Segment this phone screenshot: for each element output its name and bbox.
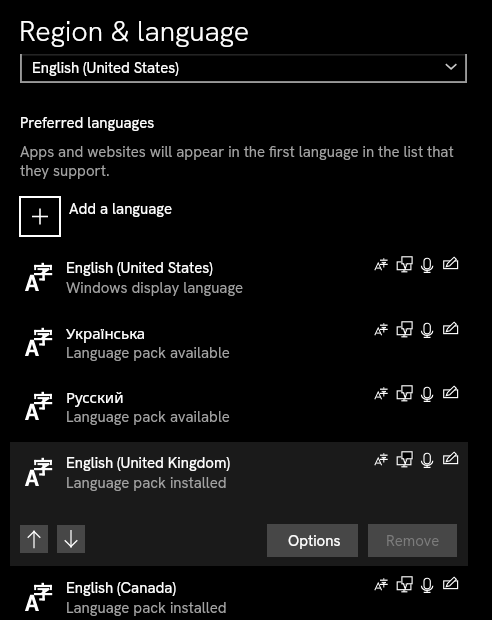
- button[interactable]: Speech recognition: [419, 575, 439, 595]
- button[interactable]: Text to speech: [395, 450, 417, 470]
- button[interactable]: Text to speech: [395, 255, 417, 275]
- button[interactable]: Speech recognition: [419, 450, 439, 470]
- staticText: Preferred languages: [20, 113, 155, 133]
- button[interactable]: Move up: [20, 525, 48, 553]
- staticText: Language pack available: [66, 407, 230, 427]
- button[interactable]: Translate: [372, 450, 392, 470]
- staticText: Add a language: [69, 199, 173, 219]
- button[interactable]: Translate: [372, 575, 392, 595]
- button[interactable]: Move down: [57, 525, 85, 553]
- staticText: English (United States): [32, 58, 179, 78]
- button[interactable]: Handwriting: [441, 255, 461, 275]
- staticText: English (Canada): [66, 578, 176, 598]
- button[interactable]: [20, 197, 320, 237]
- button[interactable]: Text to speech: [395, 575, 417, 595]
- button[interactable]: Handwriting: [441, 450, 461, 470]
- staticText: they support.: [20, 161, 110, 181]
- button[interactable]: [0, 318, 492, 370]
- button[interactable]: Handwriting: [441, 384, 461, 404]
- staticText: Language pack installed: [66, 473, 227, 493]
- staticText: Windows display language: [66, 278, 244, 298]
- staticText: Language pack available: [66, 343, 230, 363]
- staticText: Українська: [66, 323, 146, 343]
- button[interactable]: Speech recognition: [419, 384, 439, 404]
- button[interactable]: [368, 524, 457, 557]
- button[interactable]: Handwriting: [441, 320, 461, 340]
- button[interactable]: [0, 382, 492, 434]
- staticText: English (United States): [66, 258, 213, 278]
- button[interactable]: [20, 54, 467, 83]
- button[interactable]: Text to speech: [395, 384, 417, 404]
- button[interactable]: Translate: [372, 320, 392, 340]
- staticText: Apps and websites will appear in the fir…: [20, 142, 454, 162]
- staticText: Русский: [66, 387, 124, 407]
- button[interactable]: Translate: [372, 384, 392, 404]
- button[interactable]: Speech recognition: [419, 255, 439, 275]
- button[interactable]: Handwriting: [441, 575, 461, 595]
- button[interactable]: Text to speech: [395, 320, 417, 340]
- staticText: Region & language: [19, 12, 250, 49]
- button[interactable]: Speech recognition: [419, 320, 439, 340]
- button[interactable]: [0, 448, 492, 500]
- staticText: Language pack installed: [66, 598, 227, 618]
- button[interactable]: [0, 253, 492, 305]
- staticText: English (United Kingdom): [66, 453, 230, 473]
- staticText: Options: [288, 531, 341, 551]
- button[interactable]: [267, 524, 358, 557]
- staticText: Remove: [386, 531, 440, 551]
- button[interactable]: Translate: [372, 255, 392, 275]
- button[interactable]: [0, 573, 492, 620]
